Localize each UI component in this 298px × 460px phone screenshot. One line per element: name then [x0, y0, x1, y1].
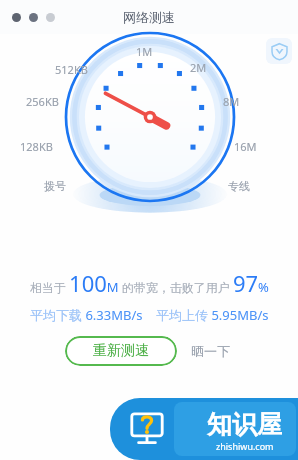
staticText: 拨号	[44, 179, 66, 193]
staticText: 专线	[228, 179, 250, 193]
staticText: 相当于 100M 的带宽，击败了用户 97%	[30, 268, 269, 298]
button[interactable]: Minimize	[29, 13, 38, 22]
staticText: 1M	[136, 44, 153, 59]
button[interactable]: zhishiwu.com watermark	[110, 398, 298, 460]
staticText: 512KB	[55, 62, 88, 77]
staticText: 晒一下	[191, 343, 230, 359]
staticText: 8M	[223, 94, 240, 109]
staticText: 知识屋	[207, 409, 282, 440]
staticText: 2M	[190, 60, 207, 75]
button[interactable]: 晒一下	[187, 339, 234, 363]
staticText: zhishiwu.com	[216, 440, 274, 452]
staticText: 256KB	[26, 94, 59, 109]
staticText: 网络测速	[123, 9, 175, 25]
button[interactable]: Maximize	[46, 13, 55, 22]
staticText: 平均下载 6.33MB/s 平均上传 5.95MB/s	[30, 306, 269, 324]
staticText: 16M	[234, 139, 257, 154]
button[interactable]: Close	[12, 13, 21, 22]
button[interactable]: 重新测速	[65, 336, 177, 366]
button[interactable]: Security shield	[266, 38, 292, 64]
staticText: 重新测速	[93, 342, 149, 360]
staticText: 128KB	[20, 139, 53, 154]
